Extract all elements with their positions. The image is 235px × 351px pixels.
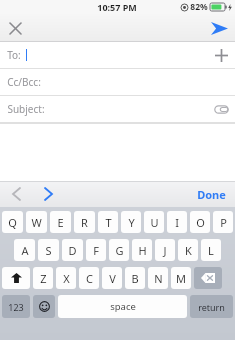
- button[interactable]: L: [201, 239, 221, 261]
- staticText: Y: [128, 215, 135, 230]
- button[interactable]: Previous field: [0, 181, 32, 207]
- staticText: G: [115, 243, 124, 258]
- button[interactable]: D: [62, 239, 83, 261]
- button[interactable]: X: [56, 267, 76, 289]
- button[interactable]: Done: [194, 184, 229, 205]
- button[interactable]: G: [109, 239, 129, 261]
- button[interactable]: Send: [203, 14, 235, 42]
- other: Add contact: [215, 49, 228, 62]
- button[interactable]: R: [74, 211, 95, 233]
- button[interactable]: I: [167, 211, 187, 233]
- button[interactable]: Add contact: [207, 42, 235, 68]
- button[interactable]: Shift: [2, 267, 30, 289]
- button[interactable]: W: [26, 211, 47, 233]
- staticText: B: [131, 271, 139, 286]
- staticText: O: [196, 215, 205, 230]
- staticText: R: [81, 215, 88, 230]
- button[interactable]: T: [98, 211, 118, 233]
- button[interactable]: O: [190, 211, 210, 233]
- staticText: Subject:: [7, 102, 45, 116]
- staticText: V: [109, 271, 116, 286]
- button[interactable]: Emoji: [33, 295, 55, 318]
- staticText: 123: [8, 301, 24, 313]
- button[interactable]: 123: [2, 295, 30, 318]
- staticText: T: [105, 215, 112, 230]
- button[interactable]: Z: [33, 267, 53, 289]
- button[interactable]: Q: [2, 211, 23, 233]
- staticText: H: [138, 243, 147, 258]
- button[interactable]: Delete: [194, 267, 222, 289]
- button[interactable]: B: [125, 267, 145, 289]
- staticText: Q: [8, 215, 17, 230]
- staticText: M: [176, 271, 186, 286]
- button[interactable]: M: [171, 267, 191, 289]
- button[interactable]: N: [148, 267, 168, 289]
- button[interactable]: Next field: [32, 181, 64, 207]
- other: Attach: [214, 105, 229, 114]
- staticText: W: [31, 215, 42, 230]
- button[interactable]: Y: [121, 211, 141, 233]
- staticText: space: [110, 300, 136, 313]
- button[interactable]: Close: [0, 14, 30, 42]
- staticText: L: [208, 243, 214, 258]
- staticText: To:: [7, 48, 21, 62]
- staticText: S: [45, 243, 52, 258]
- button[interactable]: V: [102, 267, 122, 289]
- staticText: E: [57, 215, 64, 230]
- button[interactable]: J: [155, 239, 175, 261]
- button[interactable]: space: [58, 295, 187, 318]
- staticText: 82%: [190, 1, 208, 13]
- button[interactable]: P: [213, 211, 233, 233]
- staticText: D: [68, 243, 77, 258]
- staticText: Cc/Bcc:: [7, 75, 41, 89]
- staticText: Z: [40, 271, 47, 286]
- staticText: I: [175, 215, 179, 230]
- button[interactable]: return: [190, 295, 233, 318]
- button[interactable]: K: [178, 239, 198, 261]
- staticText: 10:57 PM: [97, 1, 137, 13]
- button[interactable]: U: [144, 211, 164, 233]
- button[interactable]: C: [79, 267, 99, 289]
- staticText: F: [93, 243, 99, 258]
- button[interactable]: S: [38, 239, 59, 261]
- staticText: Done: [197, 187, 226, 202]
- staticText: K: [185, 243, 192, 258]
- button[interactable]: A: [14, 239, 35, 261]
- staticText: X: [63, 271, 70, 286]
- staticText: return: [198, 301, 225, 313]
- button[interactable]: Attach: [207, 96, 235, 122]
- staticText: U: [150, 215, 159, 230]
- button[interactable]: F: [86, 239, 106, 261]
- staticText: C: [86, 271, 93, 286]
- button[interactable]: H: [132, 239, 152, 261]
- staticText: P: [220, 215, 227, 230]
- staticText: J: [163, 243, 167, 258]
- staticText: N: [154, 271, 163, 286]
- button[interactable]: E: [50, 211, 71, 233]
- staticText: A: [21, 243, 29, 258]
